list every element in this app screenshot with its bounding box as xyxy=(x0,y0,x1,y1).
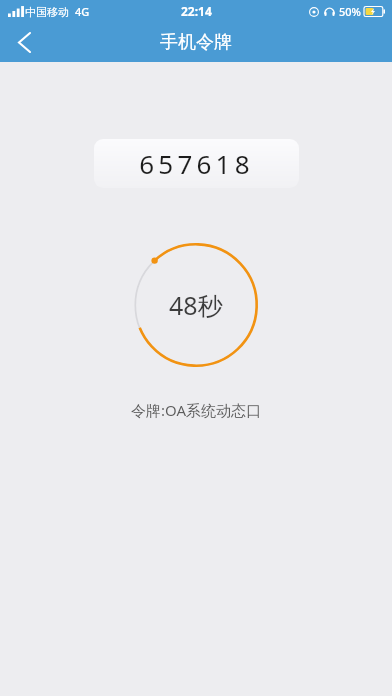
staticText: 中国移动 xyxy=(25,5,69,19)
staticText: 657618 xyxy=(139,146,254,181)
button[interactable]: Back xyxy=(0,22,48,62)
staticText: 22:14 xyxy=(181,3,212,19)
button[interactable]: 657618 xyxy=(94,139,299,188)
staticText: 4G xyxy=(75,4,90,19)
staticText: 48秒 xyxy=(169,288,223,322)
staticText: 令牌:OA系统动态口 xyxy=(0,400,392,420)
staticText: 手机令牌 xyxy=(160,31,232,54)
staticText: 50% xyxy=(339,4,361,19)
